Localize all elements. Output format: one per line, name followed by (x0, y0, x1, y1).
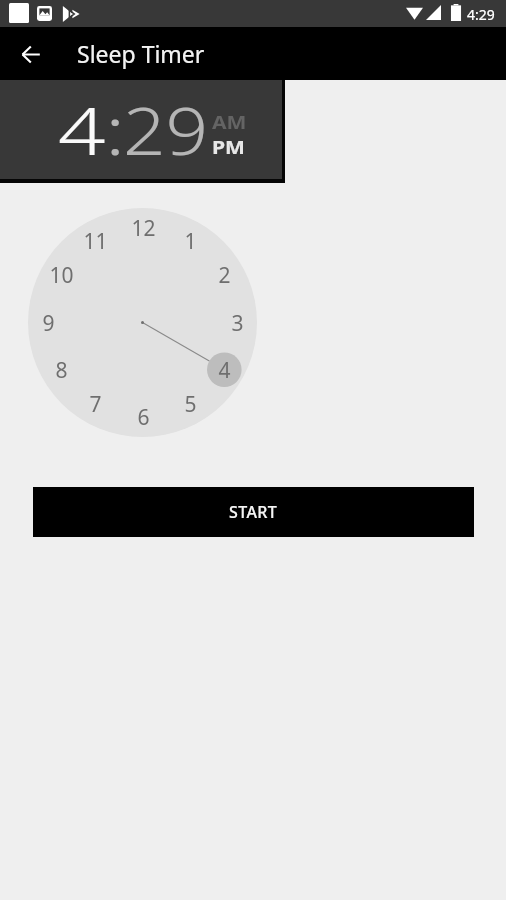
staticText: 3 (231, 309, 244, 337)
staticText: PM (212, 136, 245, 159)
button[interactable]: START (33, 487, 474, 537)
button[interactable]: 1 (172, 227, 208, 255)
staticText: 6 (137, 403, 150, 431)
staticText: 2 (218, 261, 231, 289)
button[interactable]: 6 (125, 403, 161, 431)
button[interactable]: 11 (77, 227, 113, 255)
staticText: START (229, 501, 278, 523)
button[interactable]: 4 (58, 84, 96, 174)
staticText: 4:29 (467, 5, 495, 24)
button[interactable]: 8 (43, 356, 79, 384)
button[interactable]: 29 (123, 84, 199, 174)
staticText: 29 (123, 84, 209, 174)
button[interactable]: 9 (30, 309, 66, 337)
button[interactable]: 12 (125, 214, 161, 242)
staticText: : (105, 84, 126, 174)
button[interactable]: Back (11, 34, 51, 74)
button[interactable]: 10 (43, 261, 79, 289)
button[interactable]: 5 (172, 390, 208, 418)
staticText: 4 (218, 356, 231, 384)
staticText: 11 (83, 227, 108, 255)
staticText: 9 (42, 309, 55, 337)
staticText: AM (212, 111, 247, 134)
staticText: 1 (184, 227, 197, 255)
staticText: 4 (58, 84, 106, 174)
staticText: Sleep Timer (77, 38, 205, 69)
button[interactable]: 4 (206, 356, 242, 384)
button[interactable]: 7 (77, 390, 113, 418)
staticText: 12 (131, 214, 156, 242)
button[interactable]: PM (212, 136, 239, 159)
staticText: 5 (184, 390, 197, 418)
button[interactable]: 3 (219, 309, 255, 337)
button[interactable]: AM (212, 111, 240, 134)
button[interactable]: 2 (206, 261, 242, 289)
staticText: 7 (89, 390, 102, 418)
staticText: 10 (49, 261, 74, 289)
staticText: 8 (55, 356, 68, 384)
